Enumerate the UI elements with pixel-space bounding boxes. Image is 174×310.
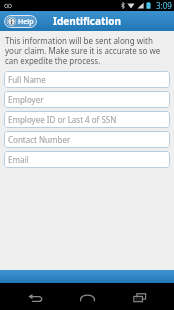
staticText: Employee ID or Last 4 of SSN	[8, 114, 117, 125]
staticText: Email	[8, 154, 29, 165]
button[interactable]: Recent apps	[122, 285, 158, 309]
button[interactable]: Full Name	[4, 71, 170, 88]
staticText: Full Name	[8, 74, 46, 85]
button[interactable]: Contact Number	[4, 131, 170, 148]
button[interactable]: Back	[17, 285, 53, 309]
button[interactable]: Help	[4, 15, 37, 28]
staticText: This information will be sent along with…	[5, 35, 169, 66]
button[interactable]: Employee ID or Last 4 of SSN	[4, 111, 170, 128]
staticText: Contact Number	[8, 134, 71, 145]
staticText: Help	[18, 17, 34, 27]
staticText: 3:09	[156, 0, 172, 11]
staticText: Identification	[53, 14, 122, 28]
button[interactable]: Employer	[4, 91, 170, 108]
staticText: Employer	[8, 94, 44, 105]
button[interactable]: Home	[69, 285, 105, 309]
button[interactable]: Email	[4, 151, 170, 168]
